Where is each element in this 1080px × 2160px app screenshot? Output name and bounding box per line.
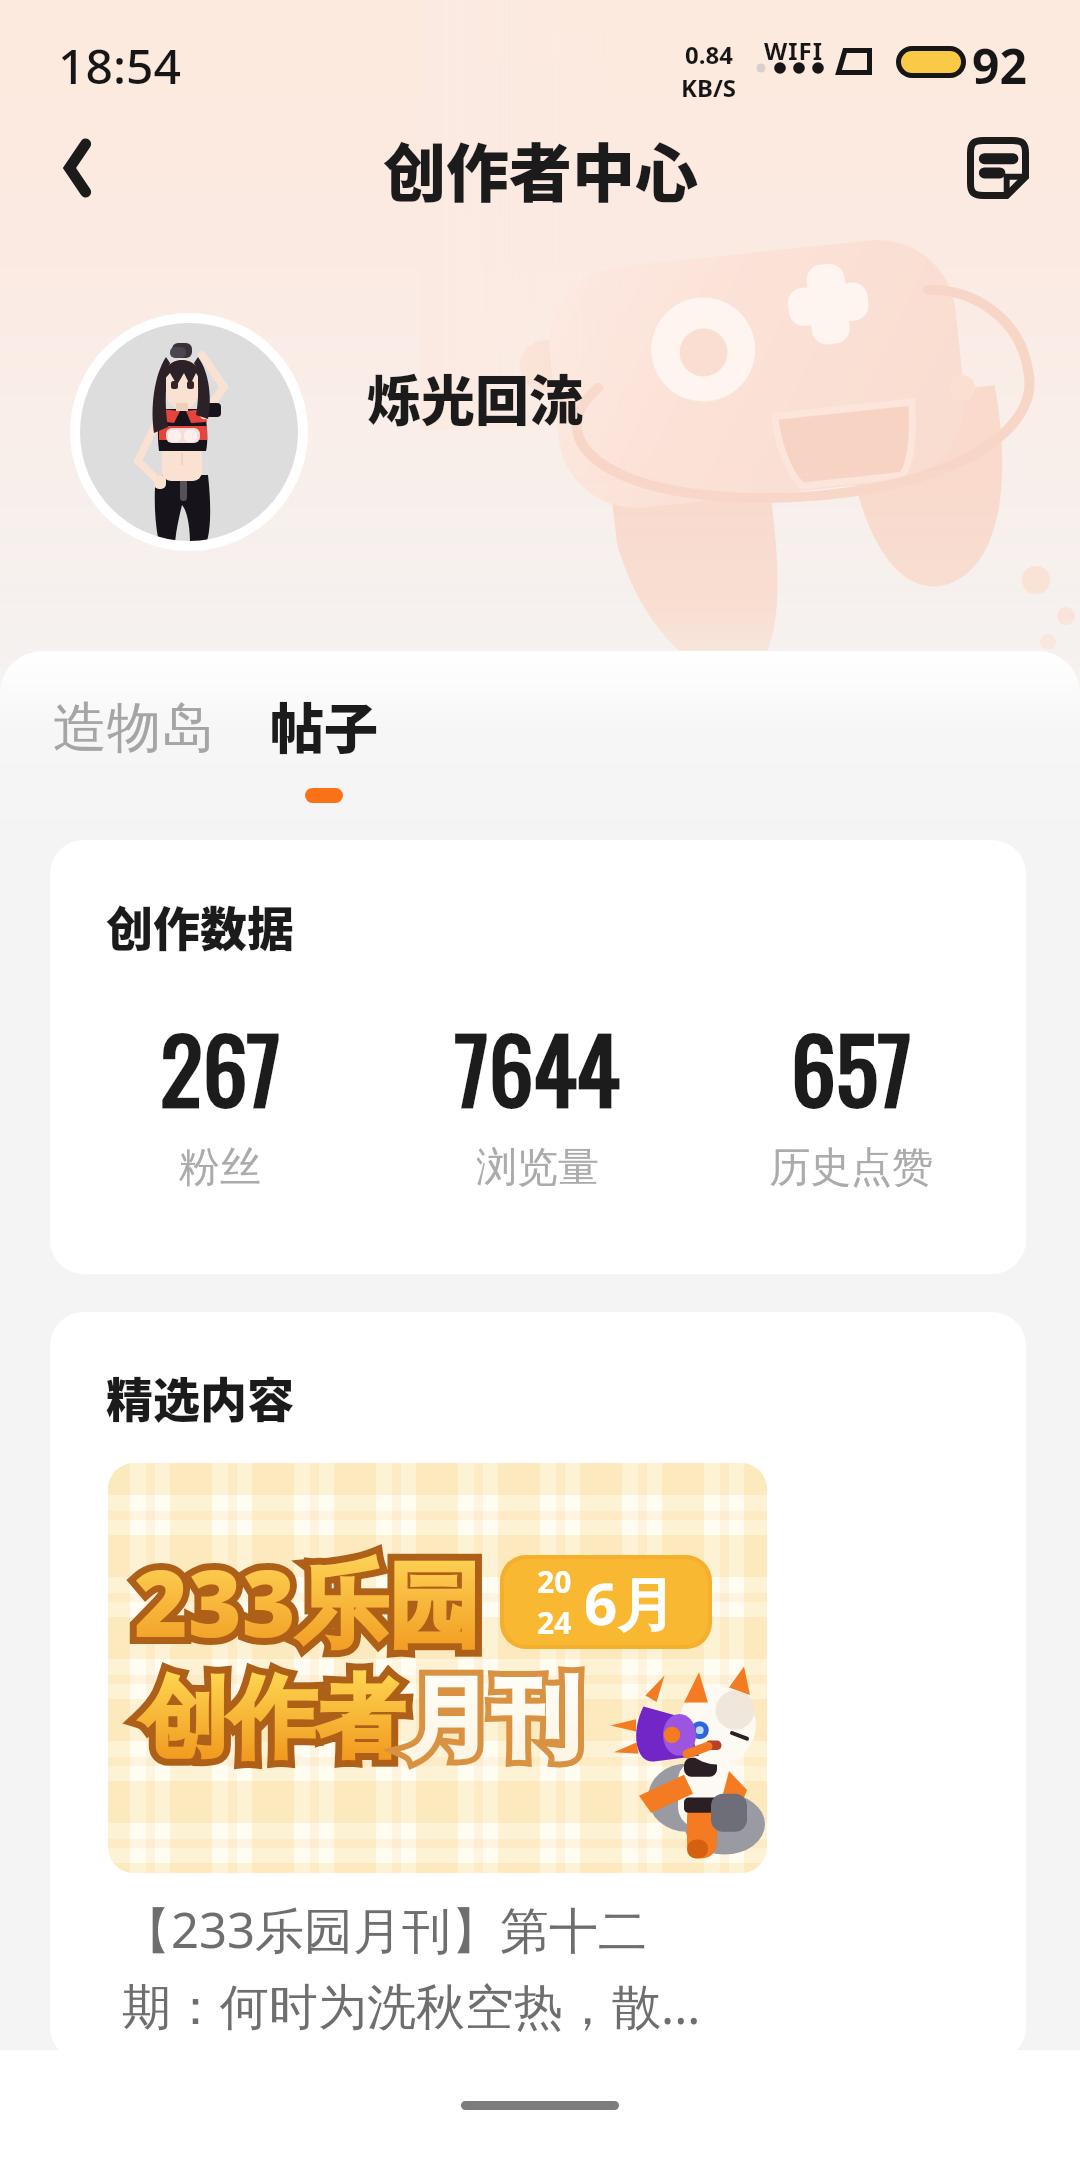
staticText: 233乐园 xyxy=(134,1539,480,1665)
staticText: 帖子 xyxy=(270,686,378,764)
staticText: 创作数据 xyxy=(106,891,294,959)
staticText: 浏览量 xyxy=(476,1142,599,1194)
staticText: 18:54 xyxy=(58,33,181,98)
staticText: 造物岛 xyxy=(53,694,215,762)
button[interactable]: 造物岛 xyxy=(44,688,224,768)
staticText: 6月 xyxy=(584,1563,676,1642)
button[interactable]: 657 xyxy=(741,1001,961,1221)
button[interactable]: Notes xyxy=(950,120,1046,216)
staticText: 创作者中心 xyxy=(383,123,698,214)
staticText: 7644 xyxy=(454,1001,620,1133)
staticText: 20 xyxy=(537,1561,572,1602)
button[interactable]: 帖子 xyxy=(260,680,388,809)
staticText: 267 xyxy=(160,1001,281,1133)
button[interactable]: 创作数据 xyxy=(50,840,1026,1274)
button[interactable]: 267 xyxy=(110,1001,330,1221)
staticText: 【233乐园月刊】第十二 期：何时为洗秋空热，散... xyxy=(122,1896,701,2038)
staticText: 233乐园 xyxy=(134,1539,480,1665)
button[interactable]: 233乐园 xyxy=(108,1463,767,1873)
staticText: 0.84 xyxy=(685,38,733,71)
staticText: 月刊 xyxy=(404,1663,580,1774)
staticText: 创作者 xyxy=(140,1663,404,1774)
staticText: 月刊 xyxy=(404,1663,580,1774)
staticText: 烁光回流 xyxy=(367,358,583,436)
staticText: 历史点赞 xyxy=(769,1142,933,1194)
button[interactable]: Back xyxy=(29,120,125,216)
staticText: 24 xyxy=(537,1602,572,1643)
staticText: 657 xyxy=(791,1001,912,1133)
staticText: 精选内容 xyxy=(106,1362,294,1430)
staticText: KB/S xyxy=(681,71,737,104)
staticText: 粉丝 xyxy=(179,1142,261,1194)
staticText: 92 xyxy=(972,33,1027,98)
staticText: WIFI xyxy=(764,34,824,67)
button[interactable]: Avatar xyxy=(80,323,298,541)
button[interactable]: 7644 xyxy=(427,1001,647,1221)
staticText: 创作者 xyxy=(140,1663,404,1774)
